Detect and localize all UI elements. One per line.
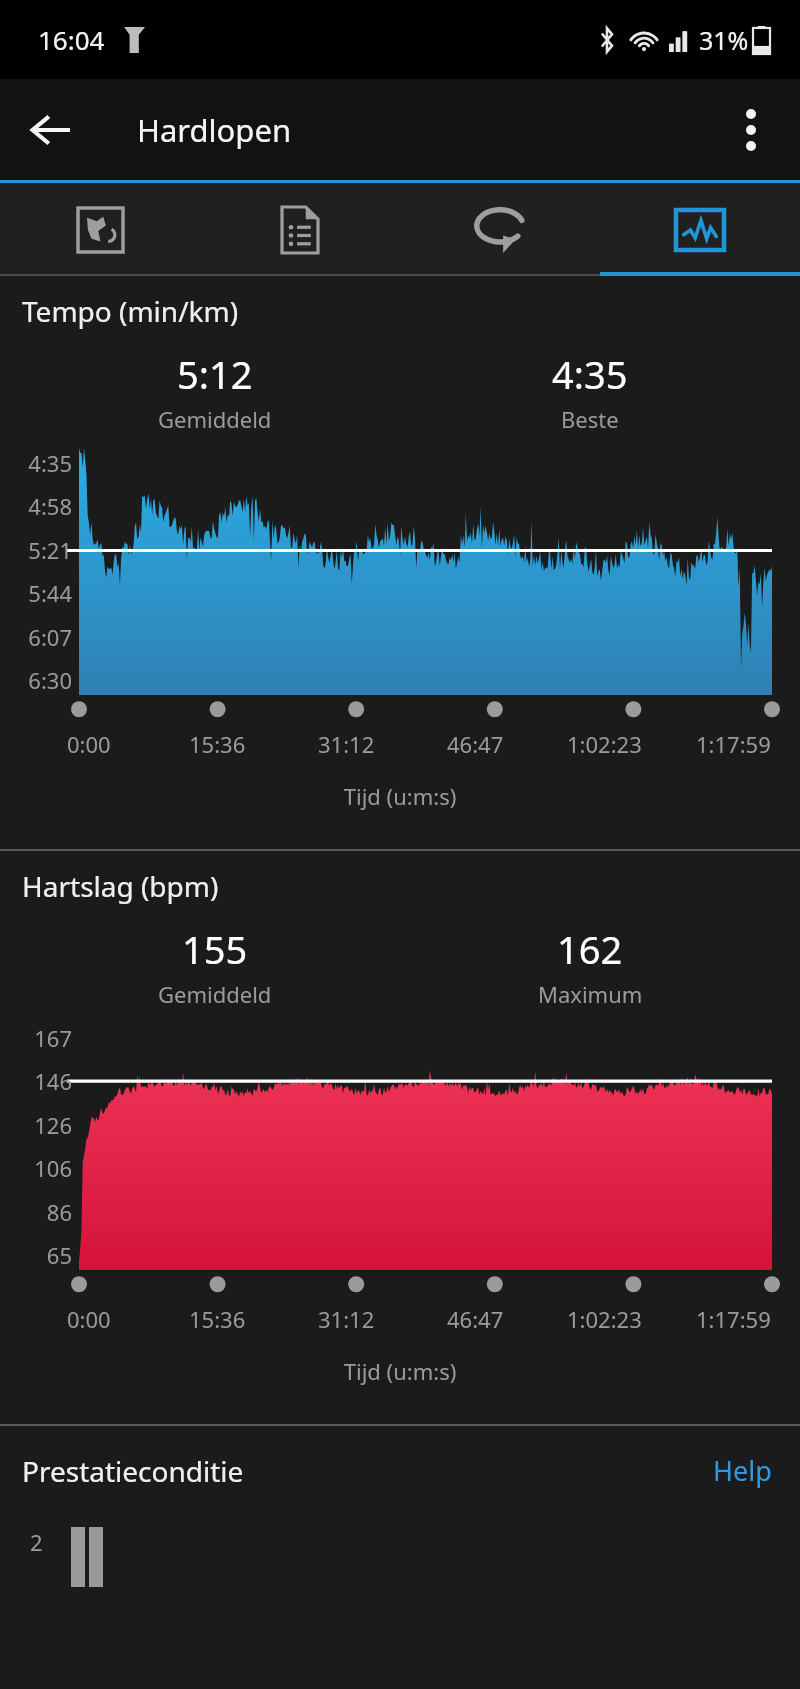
button[interactable]: Help [709, 1448, 776, 1493]
button[interactable]: Details [200, 183, 400, 276]
button[interactable]: Grafieken [600, 183, 800, 276]
button[interactable]: Ronden [400, 183, 600, 276]
staticText: 2 [30, 1527, 43, 1557]
staticText: Help [713, 1452, 772, 1489]
staticText: Maximum [538, 979, 643, 1009]
staticText: 126 [34, 1110, 72, 1140]
staticText: 5:12 [177, 348, 253, 400]
staticText: Gemiddeld [158, 979, 272, 1009]
button[interactable]: Terug [14, 93, 88, 167]
staticText: 1:17:59 [696, 729, 771, 759]
staticText: 1:02:23 [567, 1304, 642, 1334]
staticText: Hardlopen [137, 109, 292, 151]
staticText: 167 [34, 1023, 72, 1053]
staticText: 0:00 [67, 729, 111, 759]
staticText: 4:35 [28, 448, 72, 478]
button[interactable]: Kaart [0, 183, 200, 276]
staticText: 65 [46, 1240, 72, 1270]
staticText: 15:36 [189, 1304, 246, 1334]
staticText: 31:12 [318, 729, 375, 759]
staticText: 162 [557, 923, 623, 975]
staticText: 6:30 [28, 665, 72, 695]
staticText: Tijd (u:m:s) [0, 781, 800, 811]
staticText: Tijd (u:m:s) [0, 1356, 800, 1386]
staticText: Prestatieconditie [22, 1452, 244, 1490]
staticText: 46:47 [447, 729, 504, 759]
staticText: 0:00 [67, 1304, 111, 1334]
staticText: 4:35 [552, 348, 628, 400]
staticText: 15:36 [189, 729, 246, 759]
staticText: 5:21 [28, 535, 72, 565]
staticText: 86 [46, 1197, 72, 1227]
staticText: 31:12 [318, 1304, 375, 1334]
staticText: 4:58 [28, 491, 72, 521]
staticText: 155 [182, 923, 248, 975]
staticText: 16:04 [38, 22, 105, 57]
staticText: Gemiddeld [158, 404, 272, 434]
staticText: 31% [699, 23, 749, 57]
staticText: 5:44 [28, 578, 72, 608]
staticText: 6:07 [28, 622, 72, 652]
staticText: 106 [34, 1153, 72, 1183]
staticText: 1:17:59 [696, 1304, 771, 1334]
button[interactable]: Meer opties [714, 93, 788, 167]
staticText: 146 [34, 1066, 72, 1096]
staticText: Tempo (min/km) [22, 292, 239, 330]
staticText: Beste [561, 404, 619, 434]
staticText: Hartslag (bpm) [22, 867, 219, 905]
staticText: 1:02:23 [567, 729, 642, 759]
staticText: 46:47 [447, 1304, 504, 1334]
